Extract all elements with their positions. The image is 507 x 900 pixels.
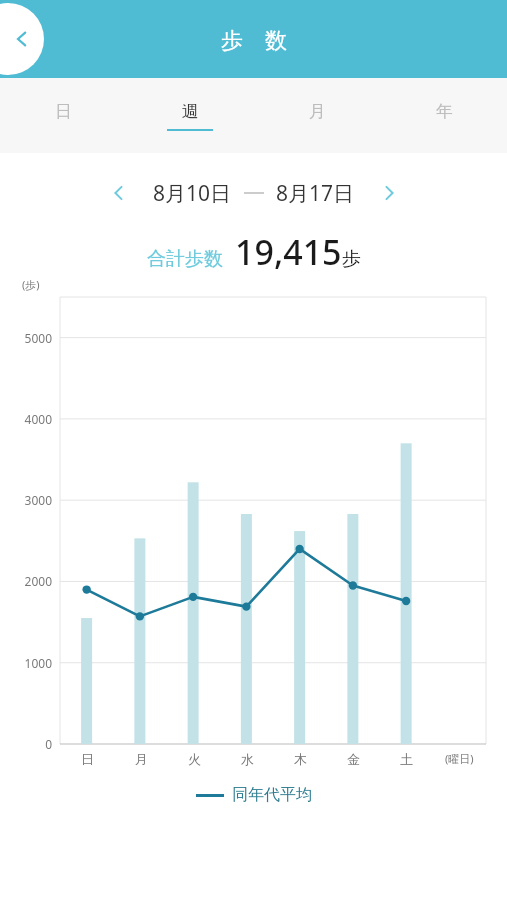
staticText: 月 <box>309 101 326 122</box>
staticText: 1000 <box>4 655 52 671</box>
staticText: 同年代平均 <box>232 785 312 805</box>
button[interactable]: 週 <box>126 78 253 153</box>
staticText: 5000 <box>4 330 52 346</box>
staticText: 4000 <box>4 411 52 427</box>
staticText: 週 <box>182 101 199 122</box>
staticText: 合計歩数 <box>147 247 223 271</box>
staticText: 歩 数 <box>221 24 287 54</box>
button[interactable]: Back <box>0 3 44 75</box>
staticText: 0 <box>4 736 52 752</box>
staticText: 金 <box>347 751 360 767</box>
staticText: 木 <box>294 751 307 767</box>
button[interactable]: Next week <box>367 171 411 215</box>
staticText: 8月10日 <box>153 179 232 208</box>
staticText: 19,415 <box>235 229 342 275</box>
staticText: 土 <box>400 751 413 767</box>
staticText: 2000 <box>4 573 52 589</box>
button[interactable]: 年 <box>380 78 507 153</box>
button[interactable]: 日 <box>0 78 126 153</box>
staticText: 月 <box>135 751 148 767</box>
staticText: 歩 <box>342 247 361 271</box>
staticText: 8月17日 <box>276 179 355 208</box>
staticText: 日 <box>81 751 94 767</box>
button[interactable]: Previous week <box>97 171 141 215</box>
staticText: 3000 <box>4 492 52 508</box>
staticText: (歩) <box>22 277 40 292</box>
staticText: (曜日) <box>445 751 474 766</box>
staticText: 日 <box>55 101 72 122</box>
staticText: 年 <box>436 101 453 122</box>
button[interactable]: 月 <box>253 78 380 153</box>
staticText: 火 <box>188 751 201 767</box>
staticText: 水 <box>241 751 254 767</box>
